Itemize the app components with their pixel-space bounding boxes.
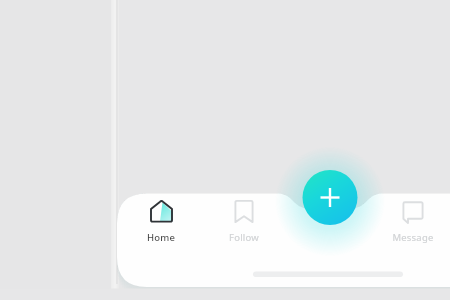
staticText: Home — [126, 231, 196, 244]
staticText: Follow — [209, 231, 279, 244]
button[interactable]: Home — [126, 197, 196, 251]
staticText: Message — [378, 231, 448, 244]
button[interactable]: Message — [378, 197, 448, 251]
button[interactable]: Add — [302, 170, 358, 226]
button[interactable]: Follow — [209, 197, 279, 251]
